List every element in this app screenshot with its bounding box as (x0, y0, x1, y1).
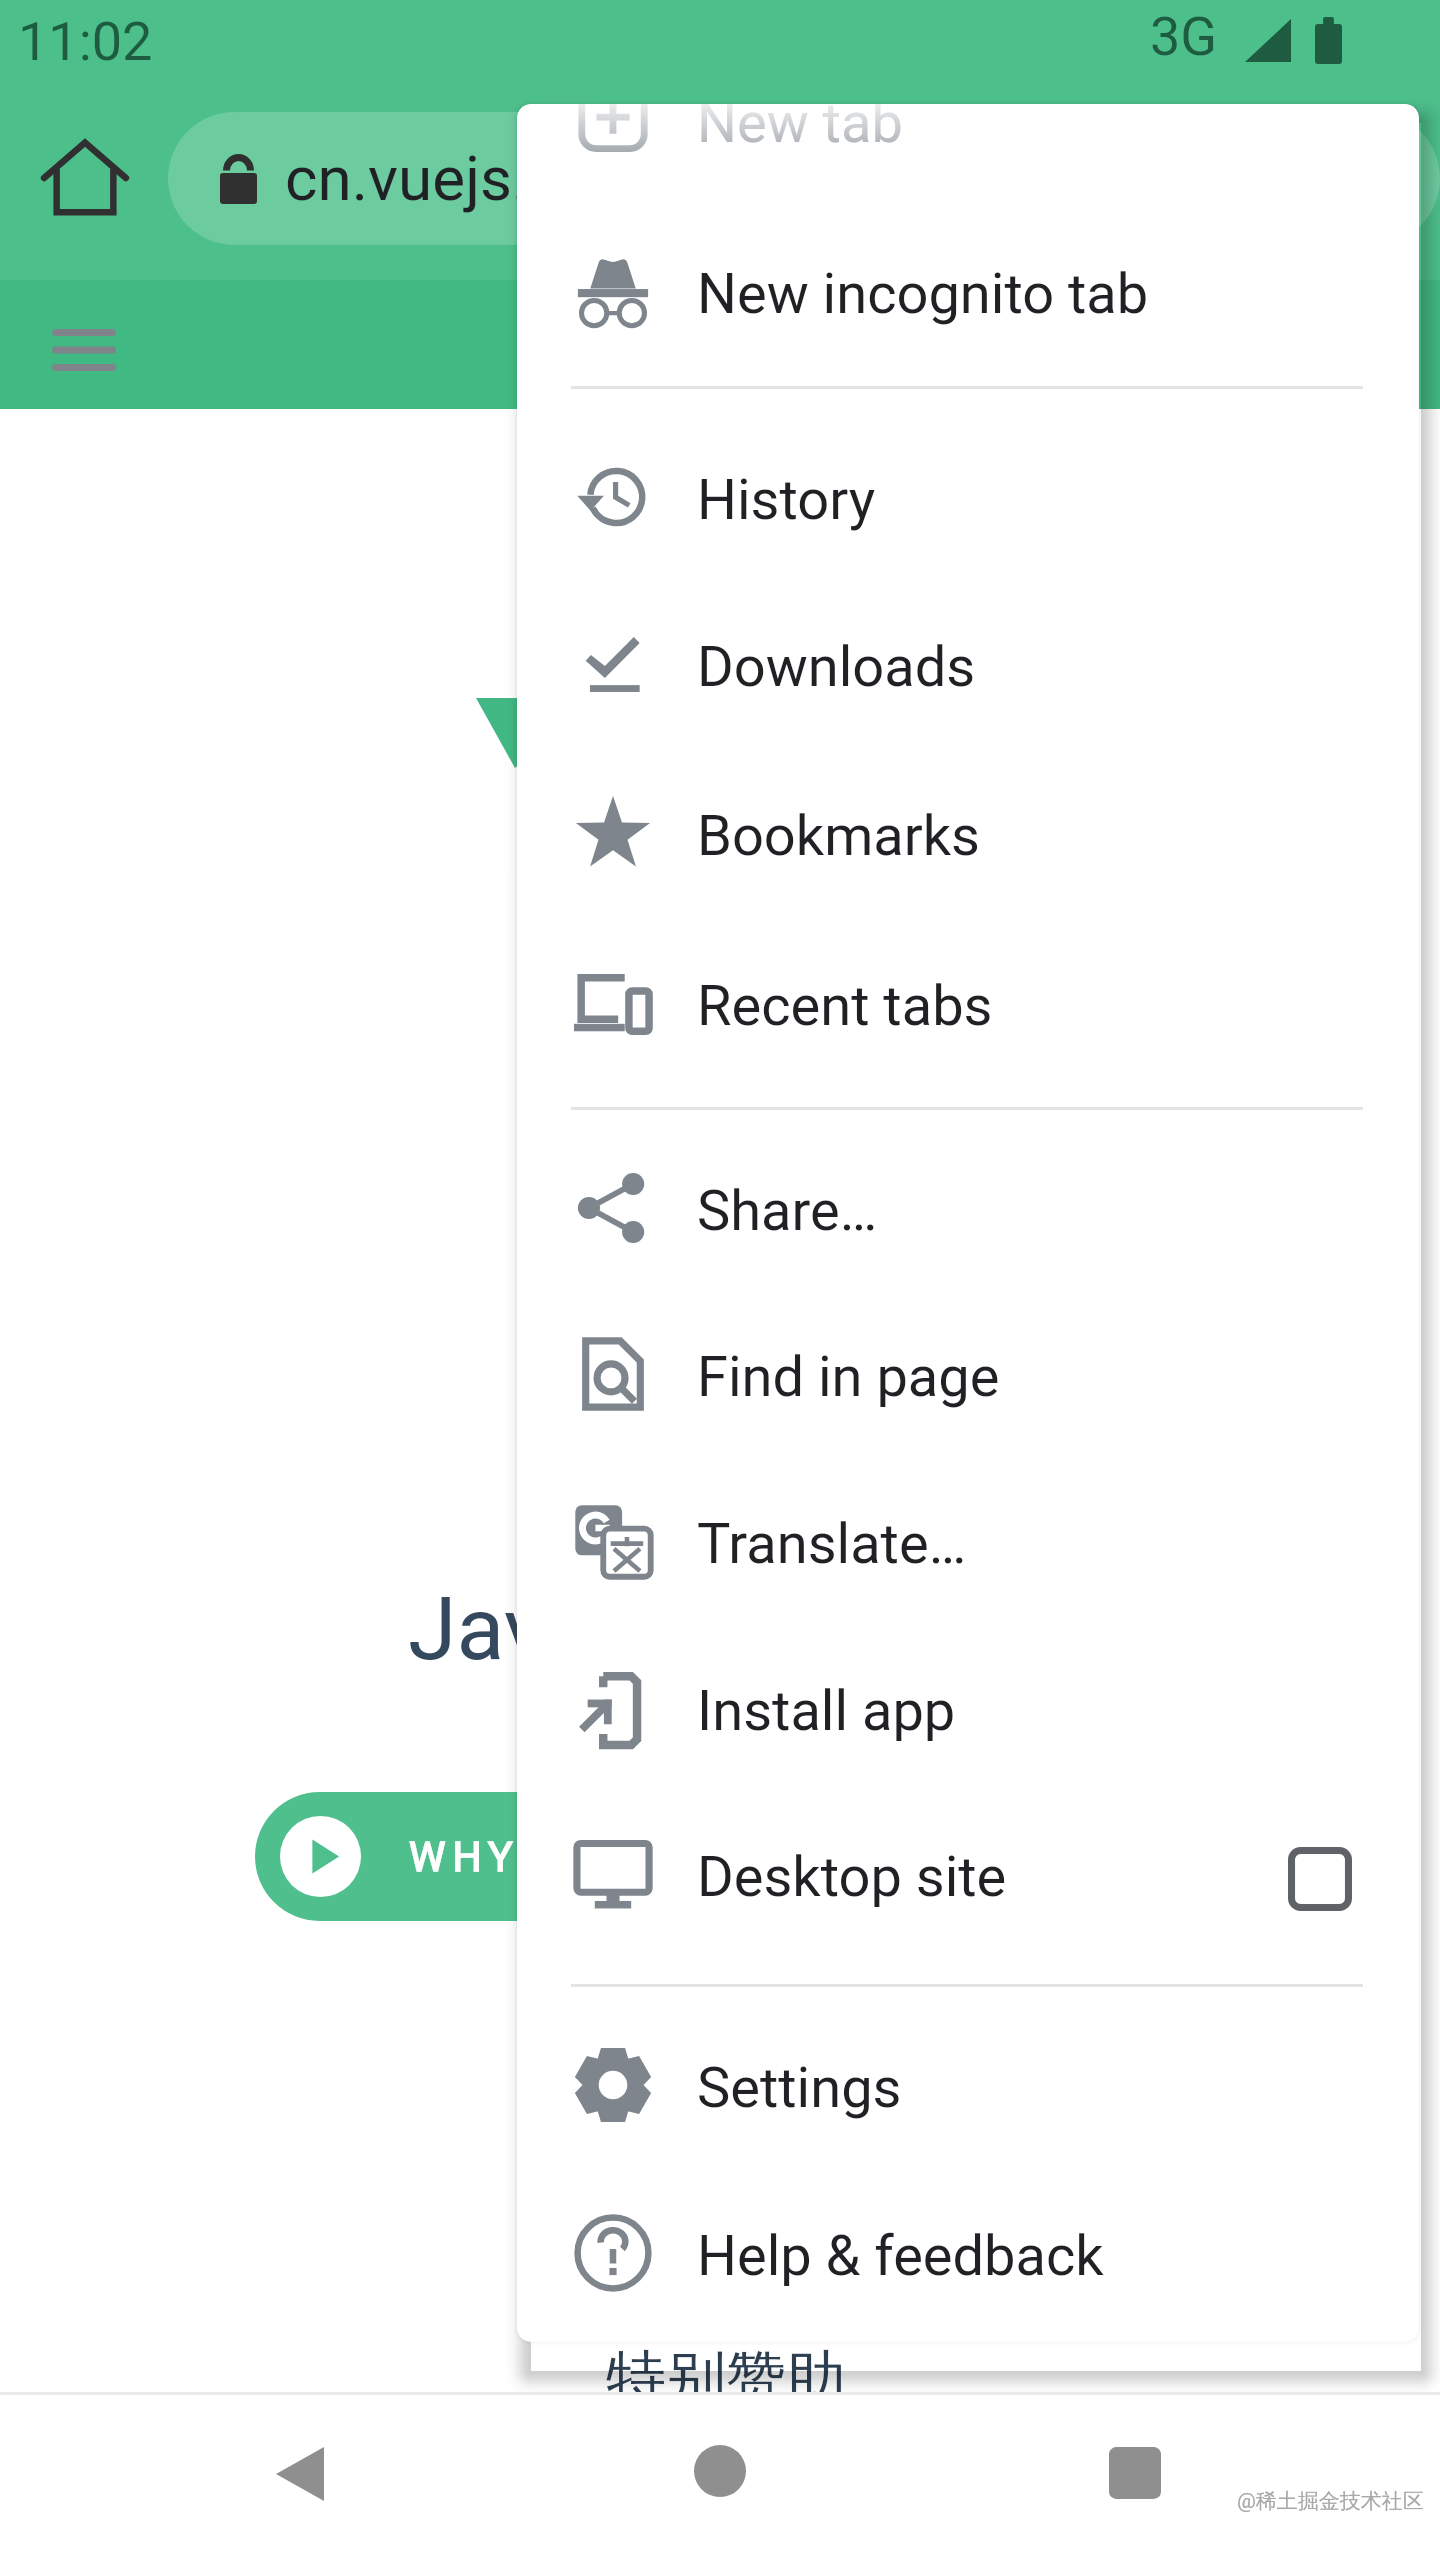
button[interactable]: Open site menu (36, 313, 132, 393)
staticText: New incognito tab (697, 261, 1149, 327)
staticText: Settings (697, 2055, 902, 2121)
staticText: Translate… (697, 1511, 967, 1577)
staticText: 特别赞助 (606, 2341, 846, 2417)
button[interactable]: Share… (517, 1124, 1419, 1292)
button[interactable]: New incognito tab (517, 207, 1419, 375)
button[interactable]: New tab (517, 104, 1419, 204)
button[interactable]: Back (276, 2447, 324, 2501)
button[interactable]: Find in page (517, 1290, 1419, 1458)
staticText: Help & feedback (697, 2223, 1104, 2289)
button[interactable]: Help & feedback (517, 2169, 1419, 2337)
staticText: Recent tabs (697, 973, 993, 1039)
staticText: New tab (697, 104, 903, 156)
button[interactable]: Search or type URL (168, 112, 1440, 245)
staticText: Install app (697, 1678, 956, 1744)
staticText: Desktop site (697, 1844, 1007, 1910)
button[interactable]: Home (694, 2445, 746, 2497)
staticText: Share… (697, 1178, 878, 1244)
button[interactable]: History (517, 413, 1419, 581)
staticText: Find in page (697, 1344, 1000, 1410)
button[interactable]: WHY (255, 1792, 685, 1921)
staticText: 11:02 (18, 10, 153, 73)
button[interactable]: Recents (1109, 2447, 1161, 2499)
button[interactable]: Bookmarks (517, 749, 1419, 917)
staticText: Bookmarks (697, 803, 980, 869)
staticText: 3G (1150, 5, 1218, 68)
staticText: Downloads (697, 634, 976, 700)
button[interactable]: Home (40, 133, 130, 223)
button[interactable]: Install app (517, 1624, 1419, 1792)
staticText: Jav (408, 1577, 547, 1680)
button[interactable]: Settings (517, 2001, 1419, 2169)
button[interactable]: Translate… (517, 1457, 1419, 1625)
staticText: History (697, 467, 876, 533)
staticText: cn.vuejs.org (285, 142, 619, 215)
button[interactable]: Recent tabs (517, 919, 1419, 1087)
staticText: @稀土掘金技术社区 (1237, 2488, 1437, 2514)
button[interactable]: Downloads (517, 580, 1419, 748)
staticText: WHY (409, 1833, 520, 1881)
button[interactable]: Desktop site (517, 1790, 1419, 1958)
